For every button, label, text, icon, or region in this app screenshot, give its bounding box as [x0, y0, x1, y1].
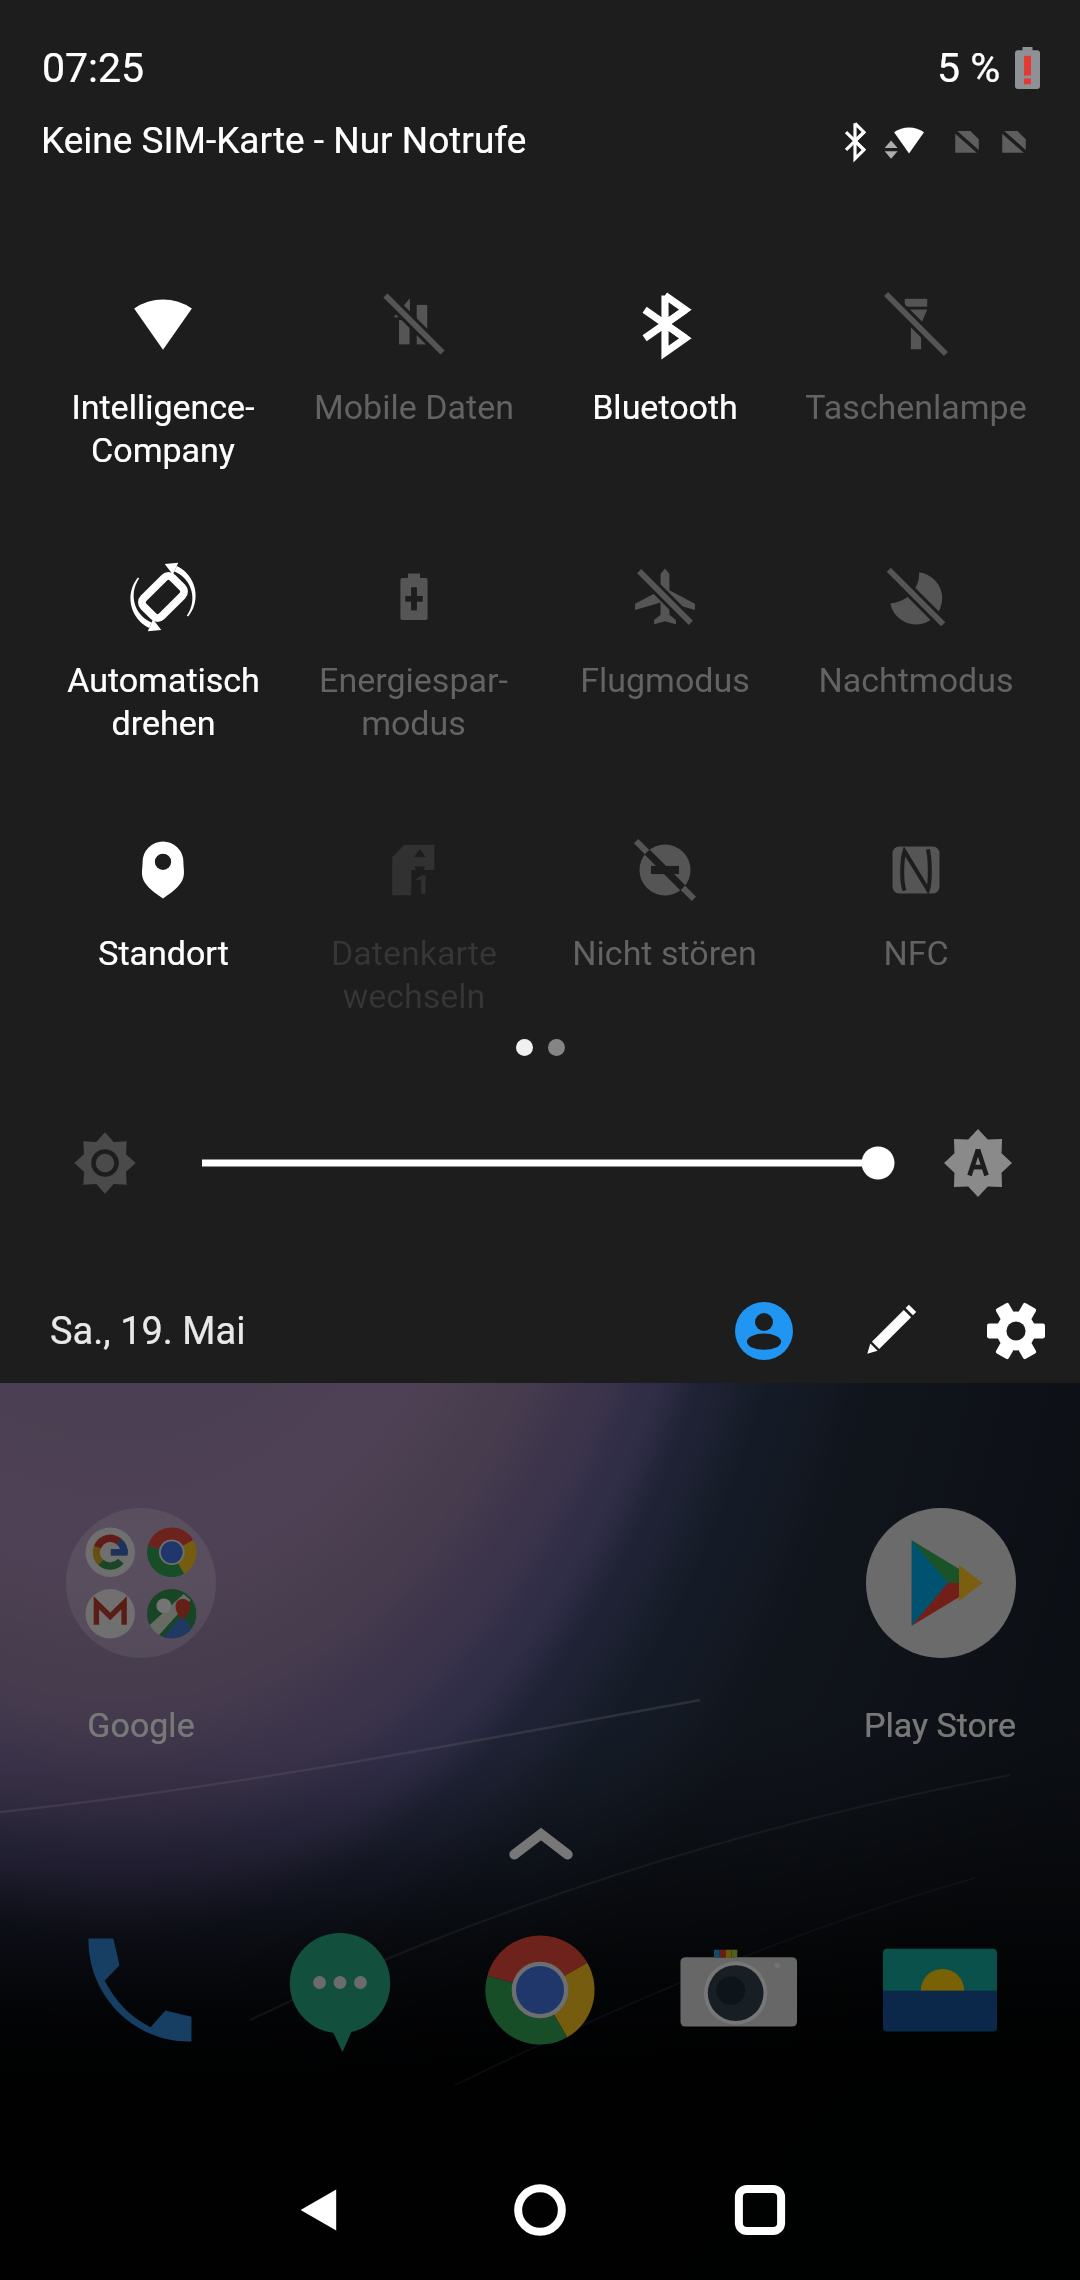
button[interactable]: Flugmodus — [539, 559, 790, 789]
button[interactable]: Taschenlampe — [790, 286, 1041, 516]
staticText: Mobile Daten — [314, 387, 514, 427]
button[interactable]: Edit — [844, 1285, 936, 1377]
button[interactable]: Standort — [38, 832, 288, 1062]
button[interactable]: Play Store — [866, 1508, 1016, 1658]
button[interactable]: Gallery — [878, 1928, 1002, 2052]
staticText: Datenkarte wechseln — [331, 933, 497, 1016]
staticText: Nachtmodus — [818, 660, 1014, 700]
button[interactable]: Automatisch drehen — [38, 559, 288, 789]
staticText: Standort — [98, 933, 229, 973]
staticText: Keine SIM-Karte - Nur Notrufe — [41, 119, 527, 162]
staticText: Google — [60, 1705, 222, 1745]
staticText: Sa., 19. Mai — [50, 1309, 246, 1354]
button[interactable]: Back — [268, 2158, 372, 2262]
staticText: Intelligence- Company — [71, 387, 255, 470]
button[interactable]: Google folder — [66, 1508, 216, 1658]
staticText: Flugmodus — [580, 660, 750, 700]
button[interactable]: Nachtmodus — [790, 559, 1041, 789]
button[interactable]: Recents — [708, 2158, 812, 2262]
button[interactable]: Camera — [678, 1928, 802, 2052]
button[interactable]: Messages — [278, 1928, 402, 2052]
button[interactable]: Mobile Daten — [288, 286, 539, 516]
staticText: Automatisch drehen — [67, 660, 260, 743]
button[interactable]: Datenkarte wechseln — [288, 832, 539, 1062]
button[interactable]: Bluetooth — [539, 286, 790, 516]
button[interactable]: Intelligence- Company — [38, 286, 288, 516]
staticText: Play Store — [820, 1705, 1060, 1745]
button[interactable]: NFC — [790, 832, 1041, 1062]
staticText: Taschenlampe — [805, 387, 1027, 427]
button[interactable]: Settings — [970, 1285, 1062, 1377]
button[interactable]: Chrome — [478, 1928, 602, 2052]
staticText: Energiespar- modus — [319, 660, 508, 743]
button[interactable]: Energiespar- modus — [288, 559, 539, 789]
staticText: Bluetooth — [592, 387, 738, 427]
button[interactable]: Home — [488, 2158, 592, 2262]
button[interactable]: User — [718, 1285, 810, 1377]
staticText: 5 % — [937, 44, 1001, 92]
button[interactable]: Phone — [78, 1928, 202, 2052]
staticText: NFC — [883, 933, 949, 973]
staticText: 07:25 — [42, 44, 145, 92]
staticText: Nicht stören — [572, 933, 757, 973]
button[interactable]: Nicht stören — [539, 832, 790, 1062]
